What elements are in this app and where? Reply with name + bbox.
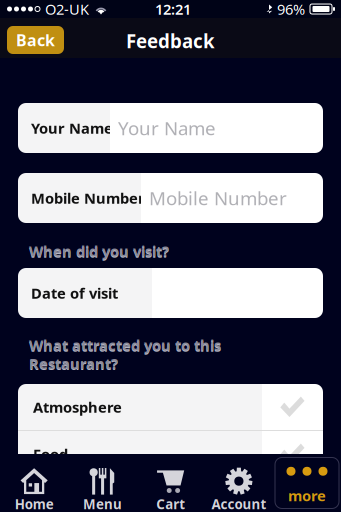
button[interactable]: Account [205, 454, 273, 512]
staticText: Back [16, 29, 55, 51]
staticText: Your Name [31, 118, 113, 138]
staticText: What attracted you to this [29, 336, 221, 356]
staticText: When did you visit? [29, 241, 169, 260]
staticText: 12:21 [155, 0, 191, 19]
staticText: 96% [277, 0, 305, 19]
button[interactable]: Cart [136, 454, 205, 512]
staticText: Food [33, 444, 68, 464]
staticText: Mobile Number [149, 186, 287, 210]
button[interactable]: Mobile Number [18, 173, 323, 223]
button[interactable]: More [273, 454, 341, 512]
button[interactable]: Menu [68, 454, 136, 512]
staticText: more [288, 486, 326, 505]
staticText: When did you visit? [29, 242, 169, 262]
button[interactable]: Your Name [18, 103, 323, 153]
staticText: Home [15, 495, 54, 512]
staticText: Your Name [118, 116, 216, 140]
staticText: Menu [83, 495, 122, 512]
button[interactable]: Back [7, 24, 64, 52]
staticText: Restaurant? [29, 353, 118, 373]
staticText: Date of visit [31, 283, 118, 303]
button[interactable]: Date of visit [18, 268, 323, 318]
staticText: What attracted you to this [29, 335, 221, 354]
staticText: Feedback [126, 29, 215, 53]
staticText: Cart [156, 495, 185, 512]
staticText: O2-UK [45, 0, 89, 19]
button[interactable]: Food [18, 431, 323, 477]
button[interactable]: Home [0, 454, 68, 512]
staticText: Atmosphere [33, 397, 122, 417]
staticText: Account [211, 495, 266, 512]
staticText: Restaurant? [29, 355, 118, 374]
button[interactable]: Atmosphere [18, 384, 323, 430]
staticText: Mobile Number [31, 188, 145, 208]
